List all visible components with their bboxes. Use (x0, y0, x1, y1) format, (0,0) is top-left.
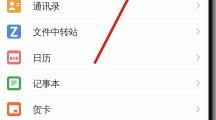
button[interactable]: Z (0, 19, 216, 44)
staticText: 文件中转站 (33, 26, 78, 38)
button[interactable]: 记事本 (0, 70, 216, 96)
staticText: 日历 (33, 52, 51, 64)
button[interactable]: 贺卡 (0, 96, 216, 120)
staticText: 贺卡 (33, 104, 51, 115)
staticText: 记事本 (33, 78, 60, 90)
staticText: Z (10, 23, 18, 40)
button[interactable]: 通讯录 (0, 0, 216, 19)
button[interactable]: 日历 (0, 44, 216, 70)
staticText: 通讯录 (33, 1, 60, 12)
